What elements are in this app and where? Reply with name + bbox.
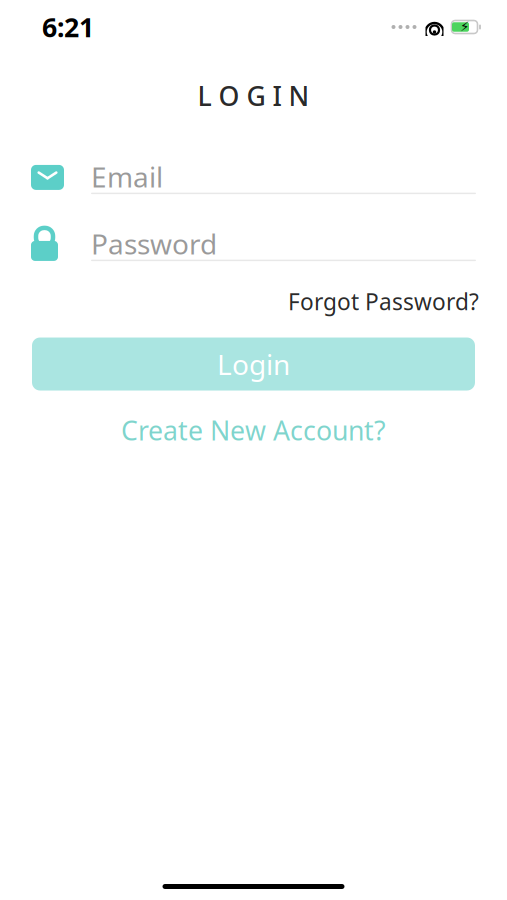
staticText: Create New Account?: [121, 412, 386, 448]
button[interactable]: Forgot Password?: [288, 286, 479, 316]
staticText: Password: [91, 225, 217, 262]
button[interactable]: Create New Account?: [121, 412, 386, 448]
staticText: Login: [217, 345, 290, 383]
staticText: ⚡︎: [460, 19, 469, 34]
staticText: L O G I N: [197, 78, 309, 113]
staticText: Forgot Password?: [288, 286, 479, 316]
staticText: Email: [91, 158, 163, 195]
button[interactable]: Login: [32, 337, 475, 390]
staticText: 6:21: [42, 9, 94, 45]
